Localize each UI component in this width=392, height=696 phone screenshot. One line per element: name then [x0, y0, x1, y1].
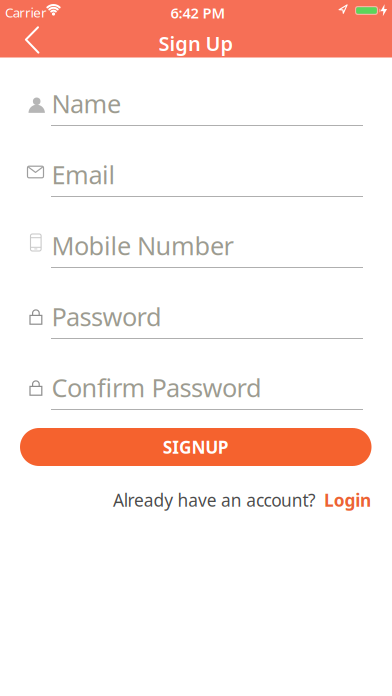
staticText: Already have an account?: [113, 488, 316, 511]
button[interactable]: SIGNUP: [20, 428, 371, 466]
staticText: Password: [51, 300, 162, 333]
staticText: 6:42 PM: [170, 3, 225, 22]
staticText: Login: [324, 488, 371, 511]
textField[interactable]: Confirm Password: [51, 371, 363, 404]
staticText: Carrier: [5, 3, 47, 21]
staticText: Email: [51, 158, 115, 191]
staticText: SIGNUP: [163, 435, 229, 458]
staticText: Sign Up: [159, 30, 233, 57]
button[interactable]: Login: [324, 488, 371, 511]
textField[interactable]: Email: [51, 158, 363, 191]
textField[interactable]: Mobile Number: [51, 229, 363, 262]
staticText: Mobile Number: [51, 229, 233, 262]
button[interactable]: Back: [15, 19, 49, 61]
textField[interactable]: Password: [51, 300, 363, 333]
staticText: Confirm Password: [51, 371, 262, 404]
textField[interactable]: Name: [51, 87, 363, 120]
staticText: Name: [51, 87, 121, 120]
